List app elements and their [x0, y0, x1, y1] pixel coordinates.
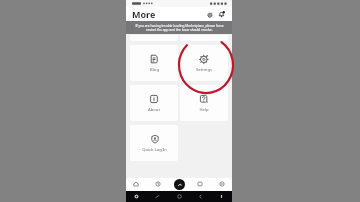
button[interactable]: Screenshot: [152, 191, 163, 202]
button[interactable]: Messages: [194, 177, 206, 191]
button[interactable]: Home: [174, 191, 185, 202]
staticText: Help: [199, 107, 209, 113]
staticText: More: [132, 8, 156, 20]
staticText: If you are having trouble loading Market…: [135, 24, 224, 32]
button[interactable]: More: [216, 177, 228, 191]
staticText: Quick Log In: [142, 147, 167, 153]
button[interactable]: Help: [180, 85, 228, 121]
button[interactable]: Record: [216, 191, 227, 202]
staticText: Blog: [150, 67, 159, 73]
button[interactable]: If you are having trouble loading Market…: [126, 21, 232, 34]
staticText: About: [148, 107, 160, 113]
button[interactable]: Blog: [130, 45, 178, 81]
staticText: Settings: [196, 67, 212, 73]
button[interactable]: Quick Log In: [130, 125, 178, 161]
button[interactable]: Settings: [180, 45, 228, 81]
button[interactable]: Settings: [204, 9, 215, 20]
button[interactable]: Activity: [152, 177, 164, 191]
button[interactable]: Create: [174, 179, 185, 190]
button[interactable]: Notifications: [216, 9, 227, 20]
button[interactable]: Back: [195, 191, 206, 202]
button[interactable]: Home: [130, 177, 142, 191]
button[interactable]: About: [130, 85, 178, 121]
button[interactable]: Assistant: [131, 191, 142, 202]
